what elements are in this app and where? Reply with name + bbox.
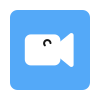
button[interactable]: Video call bbox=[0, 0, 100, 100]
